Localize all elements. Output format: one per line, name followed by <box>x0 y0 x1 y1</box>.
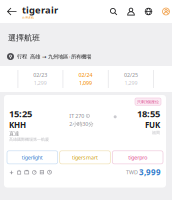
button[interactable]: Account <box>127 7 135 15</box>
staticText: 18:55 <box>137 107 160 120</box>
button[interactable]: tigerpro <box>112 151 163 164</box>
button[interactable]: 02/24 <box>63 66 108 92</box>
button[interactable]: 02/25 <box>109 66 153 92</box>
staticText: FUK <box>145 120 160 130</box>
staticText: 1,099 <box>79 79 92 87</box>
staticText: KHH <box>9 120 26 130</box>
staticText: 2小時30分 <box>69 120 93 127</box>
button[interactable]: tigersmart <box>60 151 110 164</box>
button[interactable]: 02/23 <box>18 66 62 92</box>
staticText: 02/25 <box>124 71 138 78</box>
staticText: 高雄 → 九州地區 · 所有機場 <box>30 53 91 60</box>
button[interactable]: Profile <box>162 7 170 15</box>
staticText: tigerpro <box>128 154 147 161</box>
button[interactable]: 只剩3個座位 <box>0 92 172 187</box>
staticText: 15:25 <box>9 107 32 120</box>
staticText: tigerlight <box>22 154 43 161</box>
staticText: 福岡 <box>152 130 160 135</box>
staticText: TWD <box>126 169 139 176</box>
staticText: 行程 <box>17 53 27 60</box>
staticText: 02/24 <box>79 71 93 78</box>
button[interactable]: tigerlight <box>7 151 58 164</box>
button[interactable]: Search <box>109 7 117 15</box>
staticText: tigerair <box>22 4 58 16</box>
button[interactable]: Back <box>6 5 18 17</box>
staticText: 只剩3個座位 <box>137 99 159 104</box>
staticText: 3,999 <box>139 167 161 177</box>
staticText: tigersmart <box>72 154 98 161</box>
staticText: 1,299 <box>34 79 47 87</box>
staticText: IT 270 <box>69 112 84 119</box>
staticText: 高雄國際機場第一航廈 <box>9 137 49 142</box>
staticText: 02/23 <box>33 71 47 78</box>
staticText: 台灣虎航 <box>22 16 34 19</box>
staticText: 選擇航班 <box>8 33 40 43</box>
staticText: 1,299 <box>124 79 137 87</box>
button[interactable]: Language <box>144 7 152 15</box>
staticText: 直達 <box>9 130 19 137</box>
